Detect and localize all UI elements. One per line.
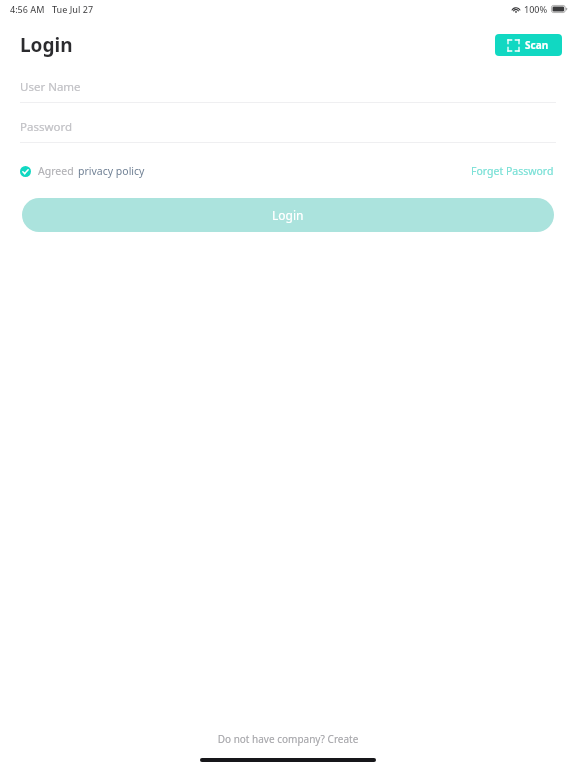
other: Scan — [508, 40, 519, 51]
staticText: Password — [20, 119, 73, 135]
button[interactable]: Do not have company? Create — [0, 730, 576, 748]
button[interactable]: Agreed — [20, 164, 147, 178]
button[interactable]: privacy policy — [78, 164, 145, 178]
button[interactable]: Login — [22, 198, 554, 232]
button[interactable]: Password — [20, 112, 556, 143]
staticText: Scan — [525, 38, 549, 52]
staticText: User Name — [20, 79, 81, 95]
button[interactable]: User Name — [20, 72, 556, 103]
button[interactable]: Forget Password — [469, 162, 556, 180]
staticText: Login — [272, 207, 304, 223]
staticText: Tue Jul 27 — [52, 3, 94, 15]
button[interactable]: Scan — [495, 34, 562, 56]
staticText: 4:56 AM — [10, 3, 45, 15]
staticText: Login — [20, 32, 73, 58]
staticText: 100% — [524, 3, 548, 15]
staticText: Agreed — [38, 164, 74, 178]
